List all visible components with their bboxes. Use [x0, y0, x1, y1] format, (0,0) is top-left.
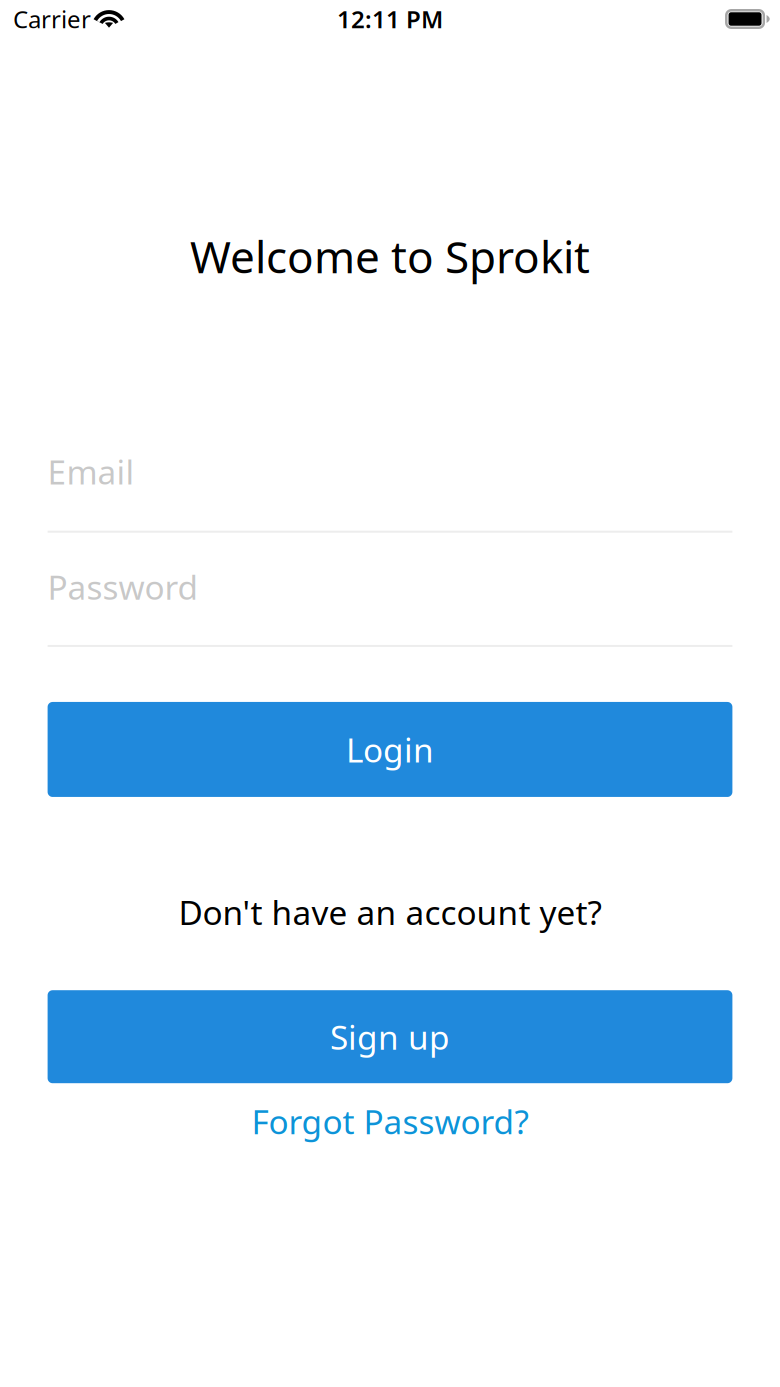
- button[interactable]: Sign up: [48, 990, 732, 1083]
- staticText: 12:11 PM: [337, 3, 443, 35]
- staticText: Email: [48, 449, 135, 494]
- staticText: Sign up: [330, 1015, 450, 1059]
- staticText: Password: [48, 565, 199, 609]
- button[interactable]: Login: [48, 702, 732, 797]
- staticText: Forgot Password?: [251, 1099, 528, 1143]
- button[interactable]: Email: [48, 449, 732, 533]
- staticText: Don't have an account yet?: [178, 890, 601, 934]
- staticText: Welcome to Sprokit: [190, 227, 590, 285]
- staticText: Carrier: [13, 3, 91, 35]
- button[interactable]: Password: [48, 533, 732, 647]
- staticText: Login: [346, 727, 434, 772]
- button[interactable]: Forgot Password?: [48, 1102, 732, 1140]
